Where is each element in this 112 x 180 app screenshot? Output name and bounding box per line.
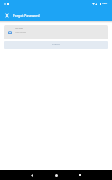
button[interactable]: Home	[44, 170, 68, 180]
button[interactable]: Your email	[4, 25, 108, 39]
staticText: Forgot Password	[13, 13, 40, 17]
staticText: 100%	[102, 2, 108, 5]
button[interactable]: SUBMIT	[4, 41, 108, 49]
button[interactable]: Recents	[68, 170, 92, 180]
button[interactable]: Close	[0, 7, 13, 21]
button[interactable]: Back	[20, 170, 44, 180]
staticText: Your email	[15, 27, 23, 29]
staticText: SUBMIT	[52, 43, 60, 46]
staticText: Your email	[15, 31, 26, 34]
